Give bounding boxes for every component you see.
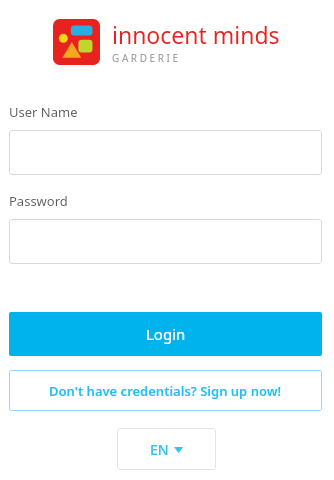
- button[interactable]: Login: [9, 312, 322, 356]
- button[interactable]: Password input: [9, 219, 322, 264]
- staticText: G A R D E R I E: [112, 51, 179, 65]
- staticText: innocent minds: [112, 19, 280, 50]
- staticText: Login: [146, 324, 186, 344]
- staticText: Don't have credentials? Sign up now!: [49, 382, 282, 400]
- staticText: User Name: [9, 103, 78, 121]
- staticText: Password: [9, 192, 68, 210]
- staticText: EN: [150, 440, 169, 459]
- button[interactable]: User Name input: [9, 130, 322, 175]
- button[interactable]: EN: [117, 428, 216, 470]
- button[interactable]: Don't have credentials? Sign up now!: [9, 370, 322, 411]
